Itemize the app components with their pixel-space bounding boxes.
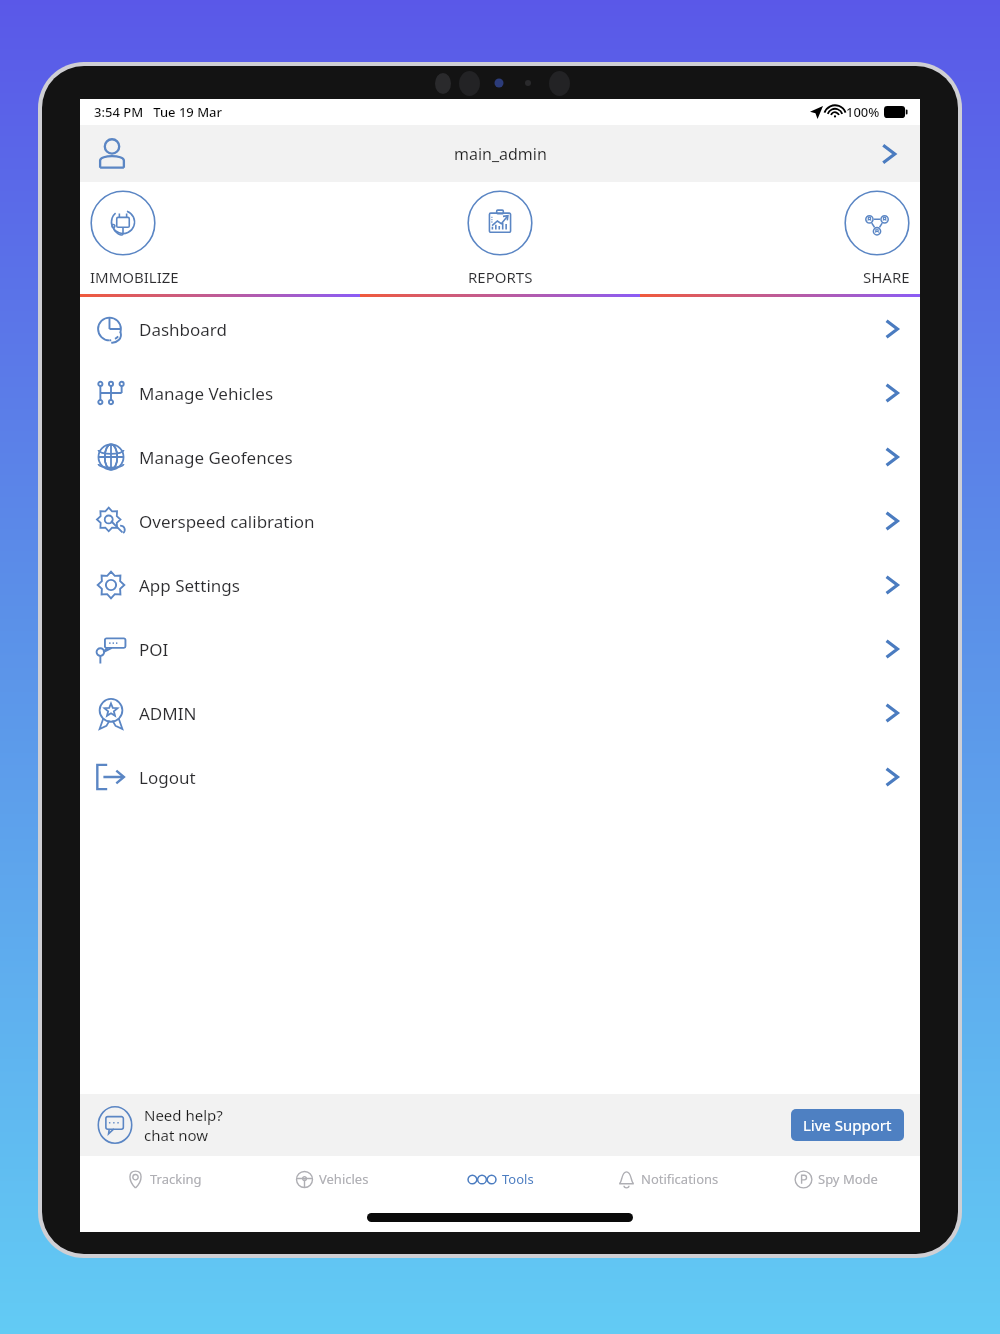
staticText: main_admin	[454, 143, 547, 165]
staticText: Live Support	[803, 1115, 892, 1135]
button[interactable]: Dashboard	[80, 297, 920, 361]
staticText: Notifications	[641, 1170, 719, 1188]
staticText: ADMIN	[139, 702, 197, 725]
staticText: REPORTS	[468, 267, 533, 287]
button[interactable]: Tracking	[80, 1156, 248, 1202]
button[interactable]: Need help?	[80, 1094, 920, 1156]
button[interactable]: Vehicles	[248, 1156, 416, 1202]
staticText: Vehicles	[319, 1170, 369, 1188]
staticText: Dashboard	[139, 318, 228, 341]
staticText: Logout	[139, 766, 196, 789]
staticText: chat now	[144, 1125, 209, 1145]
other: Profile	[94, 136, 130, 172]
button[interactable]: App Settings	[80, 553, 920, 617]
button[interactable]: Notifications	[584, 1156, 752, 1202]
staticText: IMMOBILIZE	[90, 267, 179, 287]
staticText: Manage Vehicles	[139, 382, 274, 405]
staticText: SHARE	[863, 267, 910, 287]
other: Open account	[872, 137, 906, 171]
staticText: Tracking	[150, 1170, 202, 1188]
button[interactable]: Live Support	[791, 1109, 904, 1141]
button[interactable]: POI	[80, 617, 920, 681]
button[interactable]: Tools	[416, 1156, 584, 1202]
staticText: App Settings	[139, 574, 240, 597]
button[interactable]: Manage Vehicles	[80, 361, 920, 425]
button[interactable]: Overspeed calibration	[80, 489, 920, 553]
button[interactable]: IMMOBILIZE	[80, 182, 360, 294]
staticText: 100%	[846, 103, 880, 121]
button[interactable]: REPORTS	[360, 182, 640, 294]
staticText: Manage Geofences	[139, 446, 293, 469]
button[interactable]: Spy Mode	[752, 1156, 920, 1202]
button[interactable]: ADMIN	[80, 681, 920, 745]
button[interactable]: Logout	[80, 745, 920, 809]
button[interactable]: Manage Geofences	[80, 425, 920, 489]
button[interactable]: SHARE	[640, 182, 920, 294]
staticText: Spy Mode	[818, 1170, 878, 1188]
button[interactable]: Profile	[80, 125, 920, 182]
staticText: Overspeed calibration	[139, 510, 315, 533]
staticText: 3:54 PM Tue 19 Mar	[94, 103, 222, 121]
staticText: Need help?	[144, 1105, 223, 1125]
staticText: Tools	[502, 1170, 534, 1188]
staticText: POI	[139, 638, 169, 661]
